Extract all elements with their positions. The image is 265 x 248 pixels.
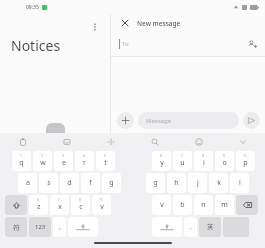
staticText: Notices [11, 36, 61, 55]
button[interactable]: Collapse [221, 133, 265, 150]
button[interactable]: Emoji [177, 133, 221, 150]
staticText: u [180, 158, 185, 168]
staticText: 2 [41, 153, 44, 158]
staticText: e [62, 158, 66, 168]
button[interactable]: k [209, 173, 228, 193]
button[interactable]: 1 [12, 151, 31, 171]
staticText: 7 [58, 197, 61, 202]
button[interactable]: Search [133, 133, 177, 150]
button[interactable]: Backspace [236, 195, 258, 215]
staticText: x [58, 202, 62, 212]
staticText: To [122, 40, 129, 48]
staticText: 8 [79, 197, 82, 202]
button[interactable]: Space [68, 217, 98, 237]
button[interactable]: 7 [173, 151, 192, 171]
staticText: t [104, 158, 107, 168]
staticText: , [59, 222, 61, 232]
button[interactable]: 3 [54, 151, 73, 171]
button[interactable]: Language [199, 217, 221, 237]
button[interactable]: Clipboard [0, 133, 45, 150]
button[interactable]: d [60, 173, 79, 193]
button[interactable]: h [167, 173, 186, 193]
staticText: v [100, 202, 104, 212]
staticText: j [197, 178, 199, 188]
button[interactable]: 9 [92, 195, 111, 215]
staticText: g [153, 178, 158, 188]
button[interactable]: , [53, 217, 66, 237]
button[interactable]: Compose [46, 123, 65, 142]
staticText: 3 [62, 153, 65, 158]
staticText: 9 [223, 153, 226, 158]
button[interactable]: More options [88, 20, 102, 34]
staticText: b [180, 200, 185, 210]
staticText: k [217, 178, 221, 188]
staticText: l [239, 178, 241, 188]
staticText: . [190, 222, 192, 232]
staticText: n [201, 200, 206, 210]
button[interactable]: 6 [152, 151, 171, 171]
staticText: v [160, 200, 164, 210]
staticText: 5 [104, 153, 107, 158]
staticText: i [203, 158, 205, 168]
staticText: 4 [83, 153, 86, 158]
button[interactable]: Add recipient [246, 38, 259, 51]
staticText: y [160, 158, 164, 168]
button[interactable]: 9 [215, 151, 234, 171]
button[interactable]: Symbols [5, 217, 27, 237]
button[interactable]: 8 [194, 151, 213, 171]
staticText: a [26, 178, 30, 188]
staticText: c [79, 202, 83, 212]
staticText: z [37, 202, 41, 212]
staticText: m [221, 200, 228, 210]
button[interactable]: j [188, 173, 207, 193]
staticText: q [19, 158, 24, 168]
button[interactable]: Shift [5, 195, 27, 215]
button[interactable]: Send [243, 112, 260, 129]
button[interactable]: m [215, 195, 234, 215]
staticText: 123 [35, 223, 46, 231]
staticText: s [47, 178, 51, 188]
staticText: f [89, 178, 92, 188]
button[interactable]: . [184, 217, 197, 237]
staticText: 6 [160, 153, 163, 158]
button[interactable]: Message [138, 112, 239, 129]
button[interactable]: 2 [33, 151, 52, 171]
button[interactable]: Close [119, 17, 131, 29]
button[interactable]: s [39, 173, 58, 193]
staticText: w [40, 158, 46, 168]
staticText: 符 [13, 223, 20, 232]
staticText: g [109, 178, 114, 188]
button[interactable]: 0 [236, 151, 255, 171]
staticText: Message [146, 117, 172, 125]
button[interactable]: g [146, 173, 165, 193]
button[interactable]: b [173, 195, 192, 215]
staticText: 0 [244, 153, 247, 158]
staticText: d [67, 178, 72, 188]
staticText: h [174, 178, 179, 188]
button[interactable]: 4 [75, 151, 94, 171]
button[interactable]: Add attachment [117, 112, 134, 129]
button[interactable]: n [194, 195, 213, 215]
staticText: 7 [181, 153, 184, 158]
staticText: 09:35 [26, 4, 39, 11]
button[interactable]: Settings [89, 133, 133, 150]
button[interactable]: l [230, 173, 249, 193]
button[interactable]: f [81, 173, 100, 193]
button[interactable]: Stickers [45, 133, 89, 150]
button[interactable]: a [18, 173, 37, 193]
button[interactable]: 6 [29, 195, 48, 215]
button[interactable]: 123 [29, 217, 51, 237]
staticText: 9 [100, 197, 103, 202]
staticText: 英 [207, 223, 214, 231]
staticText: New message [137, 19, 181, 28]
button[interactable]: 5 [96, 151, 115, 171]
staticText: 6 [37, 197, 40, 202]
button[interactable]: 8 [71, 195, 90, 215]
button[interactable]: 7 [50, 195, 69, 215]
staticText: o [222, 158, 227, 168]
button[interactable]: g [102, 173, 121, 193]
staticText: 8 [202, 153, 205, 158]
button[interactable]: v [152, 195, 171, 215]
button[interactable]: Space [152, 217, 182, 237]
